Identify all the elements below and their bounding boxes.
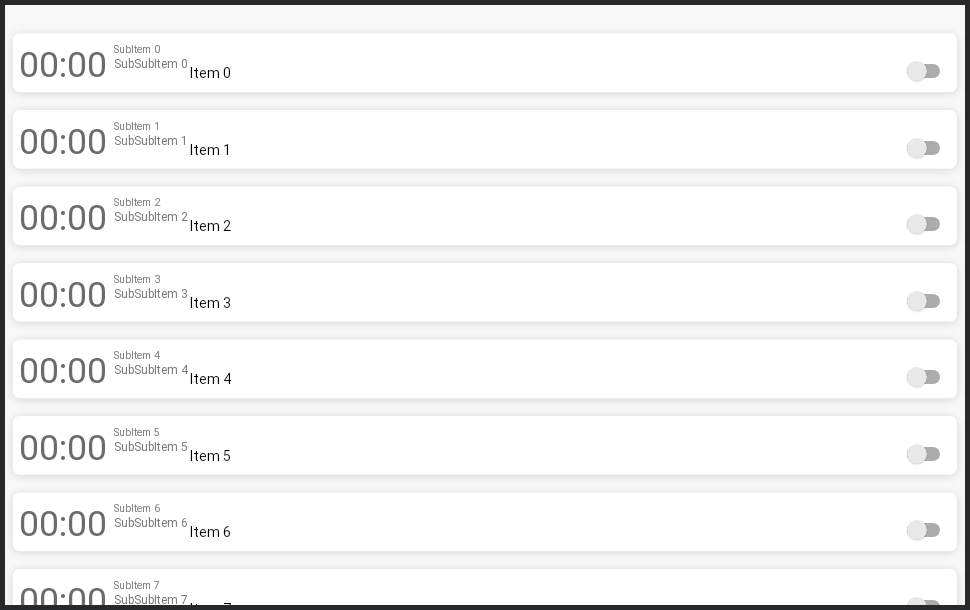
button[interactable]: 00:00: [13, 416, 957, 475]
button[interactable]: [907, 367, 940, 387]
staticText: 00:00: [19, 350, 107, 392]
staticText: SubItem 7: [114, 579, 160, 591]
staticText: Item 6: [190, 524, 231, 540]
staticText: 00:00: [19, 121, 107, 163]
staticText: Item 7: [190, 601, 231, 605]
button[interactable]: 00:00: [13, 339, 957, 398]
staticText: 00:00: [19, 274, 107, 316]
button[interactable]: [907, 291, 940, 311]
staticText: Item 1: [190, 142, 231, 158]
staticText: SubItem 2: [114, 196, 160, 208]
staticText: Item 2: [190, 218, 231, 234]
button[interactable]: 00:00: [13, 569, 957, 605]
staticText: Item 0: [190, 65, 231, 81]
staticText: SubItem 4: [114, 349, 160, 361]
staticText: Item 3: [190, 295, 231, 311]
staticText: SubSubItem 1: [114, 134, 188, 148]
staticText: 00:00: [19, 580, 107, 605]
staticText: SubItem 0: [114, 43, 160, 55]
button[interactable]: 00:00: [13, 186, 957, 245]
staticText: SubItem 5: [114, 426, 160, 438]
button[interactable]: [907, 61, 940, 81]
staticText: Item 4: [190, 371, 231, 387]
button[interactable]: [907, 444, 940, 464]
button[interactable]: 00:00: [13, 110, 957, 169]
staticText: SubSubItem 6: [114, 516, 188, 530]
staticText: 00:00: [19, 427, 107, 469]
staticText: SubSubItem 7: [114, 593, 188, 605]
staticText: Item 5: [190, 448, 231, 464]
staticText: SubItem 1: [114, 120, 160, 132]
staticText: SubSubItem 3: [114, 287, 188, 301]
staticText: SubSubItem 5: [114, 440, 188, 454]
staticText: 00:00: [19, 503, 107, 545]
staticText: 00:00: [19, 44, 107, 86]
button[interactable]: 00:00: [13, 33, 957, 92]
staticText: 00:00: [19, 197, 107, 239]
button[interactable]: 00:00: [13, 492, 957, 551]
staticText: SubItem 3: [114, 273, 160, 285]
staticText: SubSubItem 2: [114, 210, 188, 224]
staticText: SubItem 6: [114, 502, 160, 514]
button[interactable]: [907, 214, 940, 234]
button[interactable]: [907, 597, 940, 605]
button[interactable]: [907, 520, 940, 540]
button[interactable]: [907, 138, 940, 158]
staticText: SubSubItem 0: [114, 57, 188, 71]
button[interactable]: 00:00: [13, 263, 957, 322]
staticText: SubSubItem 4: [114, 363, 188, 377]
